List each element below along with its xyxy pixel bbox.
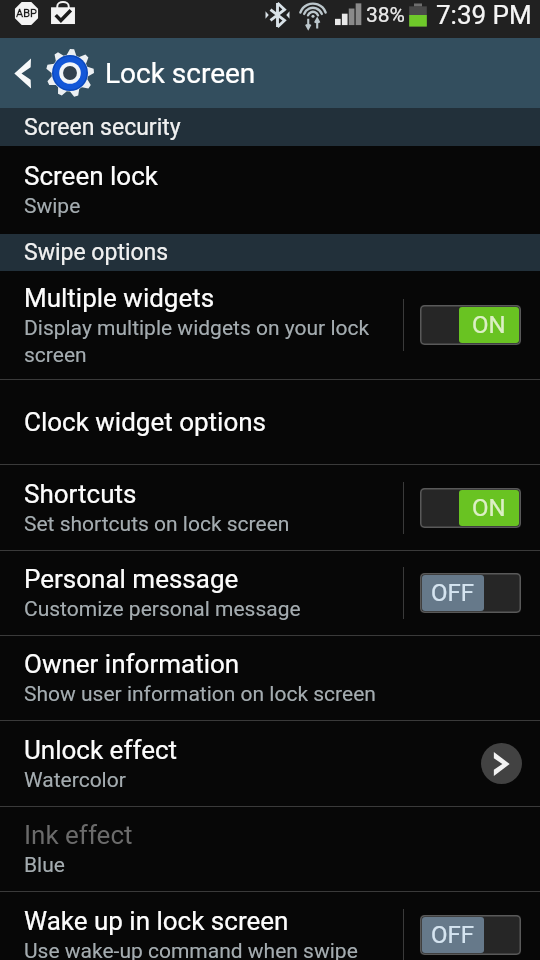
button[interactable]: Switch off (420, 915, 521, 955)
button[interactable]: Switch on (420, 305, 521, 345)
staticText: Lock screen (105, 57, 256, 90)
staticText: Screen security (24, 114, 181, 141)
staticText: Blue (24, 853, 65, 878)
button[interactable]: Multiple widgets (0, 271, 540, 379)
staticText: Show user information on lock screen (24, 682, 376, 707)
staticText: Ink effect (24, 820, 133, 850)
staticText: ON (472, 311, 506, 339)
staticText: Display multiple widgets on your lock sc… (24, 316, 389, 367)
staticText: OFF (431, 579, 475, 607)
button[interactable]: Screen lock (0, 146, 540, 234)
staticText: Watercolor (24, 768, 126, 793)
staticText: OFF (431, 921, 475, 949)
staticText: Shortcuts (24, 479, 137, 509)
staticText: Set shortcuts on lock screen (24, 512, 290, 537)
button[interactable]: Wake up in lock screen (0, 892, 540, 960)
button[interactable]: Clock widget options (0, 380, 540, 464)
staticText: Swipe (24, 194, 81, 219)
staticText: Screen lock (24, 161, 158, 191)
button[interactable]: Owner information (0, 636, 540, 720)
staticText: Customize personal message (24, 597, 301, 622)
staticText: Unlock effect (24, 735, 178, 765)
staticText: Multiple widgets (24, 283, 215, 313)
staticText: Owner information (24, 649, 240, 679)
staticText: ON (472, 494, 506, 522)
button[interactable]: Shortcuts (0, 465, 540, 550)
button[interactable]: Choose unlock effect (481, 743, 522, 784)
staticText: Use wake-up command when swipe (24, 939, 358, 960)
button[interactable]: Personal message (0, 551, 540, 635)
staticText: Clock widget options (24, 407, 267, 437)
button[interactable]: Switch off (420, 573, 521, 613)
staticText: Wake up in lock screen (24, 906, 289, 936)
staticText: Swipe options (24, 239, 169, 266)
button[interactable]: Unlock effect (0, 721, 540, 806)
staticText: ABP (16, 7, 37, 20)
button[interactable]: Navigate up (0, 38, 45, 108)
button[interactable]: Switch on (420, 488, 521, 528)
staticText: Personal message (24, 564, 239, 594)
button[interactable]: Ink effect (0, 807, 540, 891)
staticText: 38% (366, 3, 405, 28)
staticText: 7:39 PM (436, 0, 532, 30)
